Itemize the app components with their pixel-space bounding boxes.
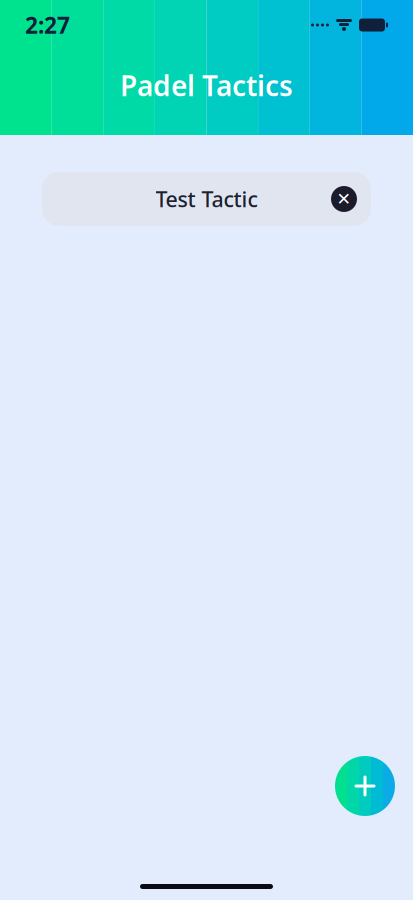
staticText: Padel Tactics <box>120 67 293 104</box>
button[interactable]: Test Tactic <box>0 172 413 226</box>
button[interactable]: Add tactic <box>335 756 395 816</box>
button[interactable]: Delete Test Tactic <box>326 179 362 219</box>
staticText: Test Tactic <box>155 185 257 213</box>
staticText: 2:27 <box>25 10 70 40</box>
staticText: ✕ <box>336 189 351 209</box>
